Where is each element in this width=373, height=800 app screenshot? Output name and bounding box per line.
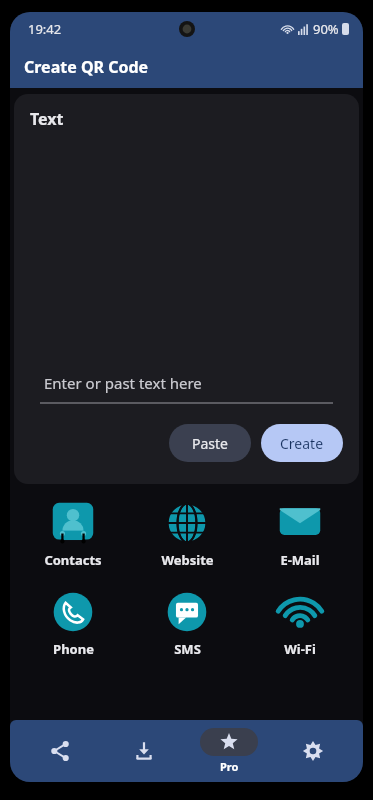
staticText: Enter or past text here [44, 373, 202, 393]
staticText: Website [161, 551, 214, 569]
button[interactable]: E-Mail [250, 498, 350, 571]
staticText: SMS [174, 640, 201, 658]
staticText: Text [30, 108, 64, 130]
button[interactable]: Wi-Fi [250, 587, 350, 660]
button[interactable]: Contacts [23, 498, 123, 571]
staticText: Wi-Fi [284, 640, 316, 658]
button[interactable]: Share [25, 725, 95, 777]
button[interactable]: Phone [23, 587, 123, 660]
staticText: Pro [220, 759, 239, 774]
button[interactable]: SMS [137, 587, 237, 660]
button[interactable]: Website [137, 498, 237, 571]
button[interactable]: Download [109, 725, 179, 777]
staticText: Create QR Code [24, 56, 149, 78]
staticText: Contacts [44, 551, 102, 569]
staticText: Create [280, 434, 324, 453]
button[interactable]: Create [261, 424, 343, 462]
staticText: 19:42 [28, 20, 62, 38]
button[interactable]: Pro [194, 728, 264, 774]
staticText: E-Mail [280, 551, 320, 569]
button[interactable]: Settings [278, 725, 348, 777]
staticText: Phone [53, 640, 94, 658]
staticText: Paste [192, 434, 228, 453]
staticText: 90% [313, 20, 339, 38]
button[interactable]: Enter or past text here [30, 363, 343, 403]
button[interactable]: Paste [169, 424, 251, 462]
